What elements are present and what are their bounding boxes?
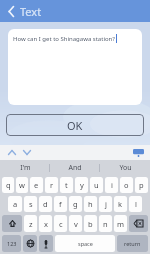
button[interactable]: m (114, 215, 127, 232)
button[interactable]: And (50, 160, 100, 175)
staticText: f (59, 199, 62, 209)
staticText: e (34, 180, 39, 190)
staticText: i (111, 180, 113, 190)
staticText: r (50, 180, 54, 190)
staticText: z (29, 219, 33, 229)
staticText: l (135, 199, 137, 209)
staticText: d (43, 199, 48, 209)
staticText: return (124, 240, 141, 247)
staticText: I'm (20, 163, 31, 173)
staticText: a (13, 199, 18, 209)
button[interactable]: v (69, 215, 82, 232)
staticText: 123 (7, 240, 17, 247)
staticText: q (6, 180, 11, 190)
button[interactable]: Backspace (129, 215, 148, 232)
button[interactable]: f (54, 196, 67, 212)
button[interactable]: space (55, 235, 115, 252)
button[interactable]: i (105, 177, 118, 193)
button[interactable]: Change language (23, 235, 37, 252)
button[interactable]: OK (6, 114, 144, 136)
staticText: You (119, 163, 132, 173)
button[interactable]: o (120, 177, 133, 193)
button[interactable]: How can I get to Shinagawa station? (8, 29, 142, 105)
button[interactable]: Voice input (39, 235, 53, 252)
button[interactable]: Shift (2, 215, 22, 232)
staticText: v (74, 219, 78, 229)
button[interactable]: b (84, 215, 97, 232)
staticText: How can I get to Shinagawa station? (13, 35, 115, 43)
button[interactable]: I'm (0, 160, 50, 175)
staticText: n (103, 219, 108, 229)
button[interactable]: j (99, 196, 112, 212)
button[interactable]: You (100, 160, 150, 175)
button[interactable]: return (117, 235, 148, 252)
staticText: g (73, 199, 78, 209)
staticText: o (124, 180, 129, 190)
button[interactable]: u (90, 177, 103, 193)
button[interactable]: a (8, 196, 22, 212)
staticText: OK (67, 118, 83, 133)
button[interactable]: k (114, 196, 127, 212)
staticText: x (44, 219, 48, 229)
staticText: And (68, 163, 82, 173)
button[interactable]: h (84, 196, 97, 212)
button[interactable]: x (39, 215, 52, 232)
staticText: k (118, 199, 123, 209)
button[interactable]: c (54, 215, 67, 232)
button[interactable]: l (129, 196, 142, 212)
button[interactable]: n (99, 215, 112, 232)
button[interactable]: g (69, 196, 82, 212)
staticText: t (65, 180, 68, 190)
button[interactable]: s (24, 196, 37, 212)
staticText: y (80, 180, 84, 190)
button[interactable]: e (30, 177, 43, 193)
staticText: u (94, 180, 99, 190)
staticText: b (88, 219, 93, 229)
staticText: p (139, 180, 144, 190)
staticText: space (78, 240, 93, 247)
button[interactable]: d (39, 196, 52, 212)
button[interactable]: Previous field (5, 146, 18, 159)
staticText: s (29, 199, 33, 209)
staticText: c (59, 219, 63, 229)
staticText: j (105, 199, 107, 209)
staticText: w (19, 180, 25, 190)
button[interactable]: 123 (2, 235, 21, 252)
button[interactable]: r (45, 177, 58, 193)
button[interactable]: q (2, 177, 14, 193)
staticText: h (88, 199, 93, 209)
button[interactable]: Back (4, 0, 45, 22)
button[interactable]: z (24, 215, 37, 232)
staticText: m (117, 219, 125, 229)
button[interactable]: y (75, 177, 88, 193)
button[interactable]: w (16, 177, 28, 193)
staticText: Text (20, 4, 42, 19)
button[interactable]: Hide keyboard (131, 147, 145, 158)
button[interactable]: t (60, 177, 73, 193)
button[interactable]: Next field (20, 146, 33, 159)
button[interactable]: p (135, 177, 148, 193)
